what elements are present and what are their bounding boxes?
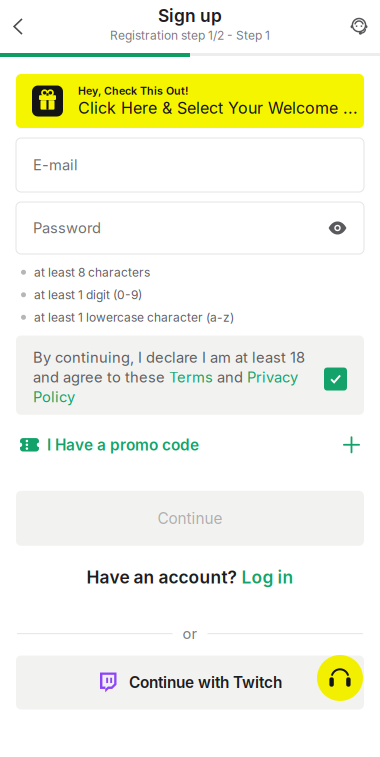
staticText: Password	[33, 219, 101, 237]
staticText: at least 8 characters	[34, 265, 150, 279]
staticText: E-mail	[33, 156, 78, 174]
staticText: Sign up	[158, 5, 222, 26]
staticText: Click Here & Select Your Welcome ...	[78, 98, 358, 118]
button[interactable]: Accept terms	[324, 368, 347, 391]
button[interactable]: Password	[16, 202, 364, 254]
button[interactable]: Terms	[169, 368, 213, 386]
staticText: Registration step 1/2 - Step 1	[110, 28, 270, 43]
button[interactable]: Support chat	[317, 655, 363, 701]
staticText: Continue with Twitch	[129, 673, 282, 692]
staticText: Continue	[157, 509, 222, 528]
button[interactable]: Back	[1, 6, 35, 46]
staticText: at least 1 digit (0-9)	[34, 287, 142, 302]
staticText: Policy	[33, 388, 75, 406]
button[interactable]: Privacy	[247, 368, 298, 386]
staticText: By continuing, I declare I am at least 1…	[33, 349, 305, 366]
button[interactable]: Hey, Check This Out!	[16, 74, 364, 128]
staticText: and agree to these	[33, 368, 169, 386]
button[interactable]: I Have a promo code	[0, 420, 380, 470]
staticText: and	[213, 368, 247, 386]
button[interactable]: E-mail	[16, 138, 364, 192]
staticText: Hey, Check This Out!	[78, 84, 188, 97]
button[interactable]: Support	[342, 6, 376, 46]
button[interactable]: Log in	[241, 567, 293, 588]
button[interactable]: Continue with Twitch	[16, 655, 364, 709]
button[interactable]: Policy	[33, 388, 75, 406]
button[interactable]: Continue	[16, 491, 364, 546]
staticText: Have an account?	[86, 567, 236, 588]
staticText: Privacy	[247, 368, 298, 386]
staticText: or	[182, 625, 197, 642]
staticText: at least 1 lowercase character (a-z)	[34, 310, 234, 324]
staticText: Terms	[169, 368, 213, 386]
staticText: I Have a promo code	[47, 435, 199, 454]
staticText: Log in	[241, 567, 293, 588]
